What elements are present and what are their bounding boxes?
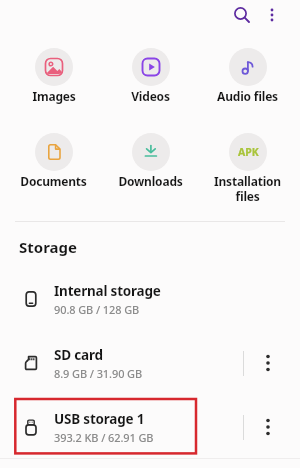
staticText: Installation files xyxy=(214,173,281,204)
button[interactable]: Videos xyxy=(102,48,199,104)
button[interactable] xyxy=(256,415,280,439)
staticText: Downloads xyxy=(118,173,183,189)
staticText: APK xyxy=(238,145,259,159)
staticText: Documents xyxy=(20,173,87,189)
button[interactable]: Documents xyxy=(5,133,102,189)
button[interactable] xyxy=(256,351,280,375)
button[interactable]: APK xyxy=(199,133,296,204)
button[interactable] xyxy=(260,3,284,27)
button[interactable]: Internal storage xyxy=(0,267,300,331)
staticText: USB storage 1 xyxy=(54,410,145,428)
button[interactable]: SD card xyxy=(0,331,300,395)
staticText: Images xyxy=(32,88,76,104)
staticText: 90.8 GB / 128 GB xyxy=(54,302,140,317)
staticText: Audio files xyxy=(217,88,278,104)
button[interactable]: USB storage 1 xyxy=(0,395,300,459)
button[interactable]: Audio files xyxy=(199,48,296,104)
button[interactable]: Downloads xyxy=(102,133,199,189)
staticText: 393.2 KB / 62.91 GB xyxy=(54,430,154,445)
staticText: SD card xyxy=(54,346,103,364)
staticText: 8.9 GB / 31.90 GB xyxy=(54,366,143,381)
button[interactable] xyxy=(230,3,254,27)
staticText: Videos xyxy=(131,88,170,104)
staticText: Internal storage xyxy=(54,282,161,300)
staticText: Storage xyxy=(19,237,77,257)
button[interactable]: Images xyxy=(5,48,102,104)
